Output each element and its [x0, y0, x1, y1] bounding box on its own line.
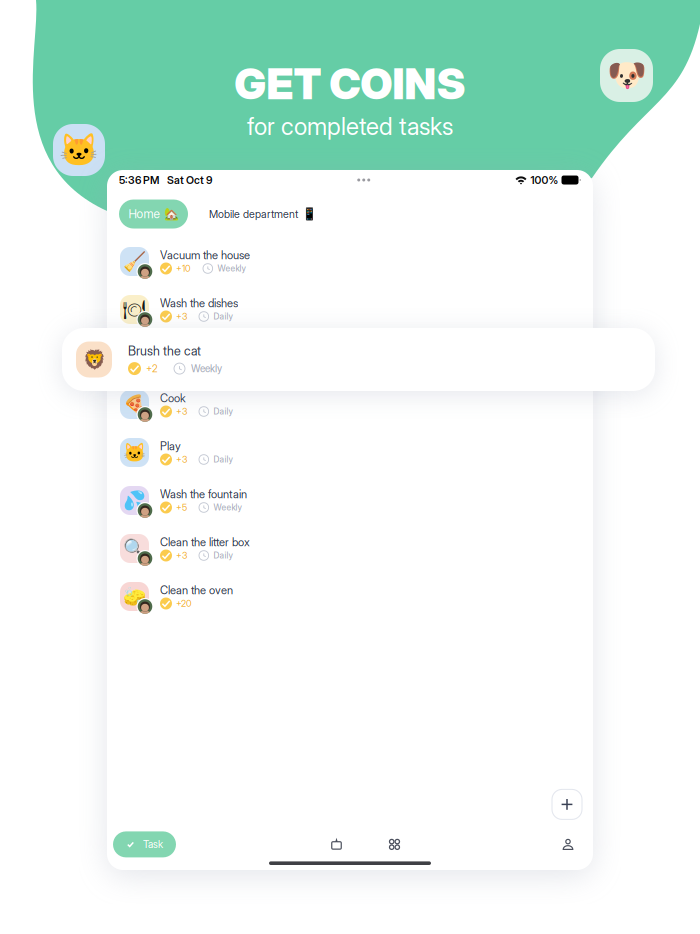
staticText: Sat Oct 9	[167, 173, 212, 186]
button[interactable]: 🧹	[107, 239, 593, 287]
staticText: +3	[176, 311, 187, 322]
staticText: GET COINS	[234, 58, 465, 110]
staticText: +3	[176, 454, 187, 465]
staticText: Home	[128, 207, 159, 221]
staticText: 🧽	[123, 586, 146, 607]
staticText: Clean the litter box	[160, 535, 250, 549]
staticText: Weekly	[214, 502, 242, 513]
staticText: Vacuum the house	[160, 248, 250, 262]
staticText: 5:36 PM	[119, 173, 159, 186]
staticText: Daily	[214, 454, 233, 465]
button[interactable]: 💦	[107, 478, 593, 526]
staticText: Daily	[214, 550, 233, 561]
staticText: for completed tasks	[247, 112, 453, 141]
staticText: Weekly	[218, 263, 246, 274]
staticText: +5	[176, 502, 187, 513]
staticText: 🐱	[59, 132, 99, 168]
staticText: +20	[176, 598, 192, 609]
staticText: Daily	[214, 406, 233, 417]
button[interactable]: 🦁	[62, 328, 655, 391]
staticText: +3	[176, 550, 187, 561]
staticText: 🏡	[163, 207, 178, 221]
staticText: Mobile department	[209, 207, 298, 220]
button[interactable]: 🍕	[107, 382, 593, 430]
staticText: +2	[146, 363, 158, 374]
button[interactable]: Task	[113, 831, 176, 857]
staticText: Wash the dishes	[160, 296, 238, 310]
button[interactable]: 🍽	[107, 287, 593, 335]
staticText: 🍕	[123, 394, 146, 415]
staticText: +3	[176, 406, 187, 417]
staticText: +10	[176, 263, 191, 274]
staticText: 🧹	[123, 251, 146, 272]
staticText: 🔍	[123, 538, 146, 559]
staticText: 🍽	[122, 299, 146, 320]
staticText: 💦	[123, 490, 146, 511]
staticText: 🐱	[123, 442, 146, 463]
staticText: Task	[143, 838, 163, 851]
staticText: Wash the fountain	[160, 487, 247, 501]
staticText: 🐶	[606, 57, 646, 94]
button[interactable]: 🧽	[107, 574, 593, 622]
button[interactable]: Home	[119, 199, 188, 228]
staticText: Brush the cat	[128, 343, 201, 359]
staticText: Daily	[214, 311, 233, 322]
staticText: Weekly	[191, 363, 222, 374]
button[interactable]: Mobile department	[209, 199, 317, 228]
staticText: 🦁	[82, 349, 105, 370]
button[interactable]: Profile	[555, 831, 581, 857]
button[interactable]: Home	[323, 831, 349, 857]
staticText: 📱	[302, 207, 317, 221]
staticText: Play	[160, 439, 181, 453]
button[interactable]: 🐱	[107, 430, 593, 478]
staticText: Cook	[160, 391, 186, 405]
staticText: 100%	[530, 173, 558, 186]
button[interactable]: 🔍	[107, 526, 593, 574]
button[interactable]: Categories	[381, 831, 407, 857]
staticText: Clean the oven	[160, 583, 233, 597]
button[interactable]: Add task	[552, 789, 582, 819]
